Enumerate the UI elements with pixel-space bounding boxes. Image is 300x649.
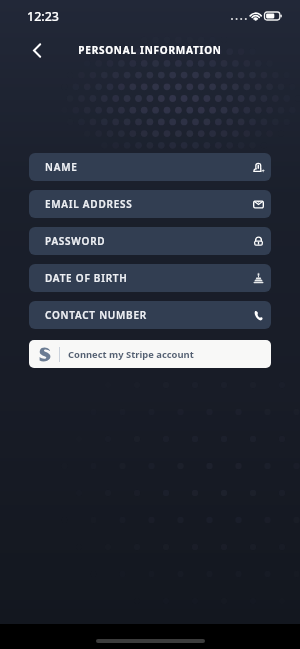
staticText: Connect my Stripe account [68,348,194,361]
staticText: CONTACT NUMBER [45,308,147,322]
button[interactable]: PASSWORD [29,227,271,255]
staticText: 12:23 [27,8,60,25]
button[interactable]: DATE OF BIRTH [29,264,271,292]
button[interactable]: Back [24,37,51,64]
staticText: PASSWORD [45,234,106,248]
staticText: EMAIL ADDRESS [45,197,133,211]
button[interactable]: NAME [29,153,271,181]
staticText: NAME [45,160,78,174]
button[interactable]: CONTACT NUMBER [29,301,271,329]
staticText: DATE OF BIRTH [45,271,128,285]
button[interactable]: Connect my Stripe account [29,340,271,368]
staticText: PERSONAL INFORMATION [78,43,222,57]
button[interactable]: EMAIL ADDRESS [29,190,271,218]
